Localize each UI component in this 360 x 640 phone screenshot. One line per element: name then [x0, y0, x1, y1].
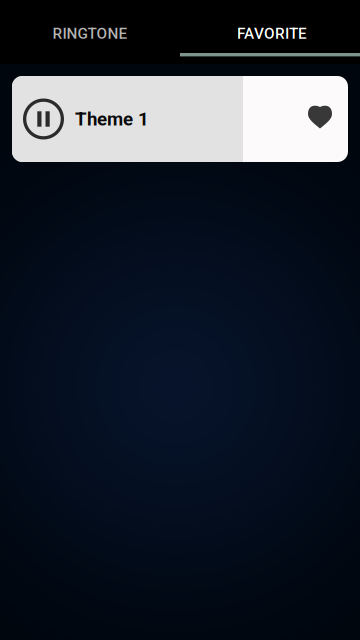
staticText: Theme 1: [75, 108, 149, 130]
button[interactable]: FAVORITE: [180, 0, 360, 64]
staticText: FAVORITE: [237, 24, 307, 42]
staticText: RINGTONE: [52, 24, 127, 42]
button[interactable]: Pause: [12, 76, 75, 162]
button[interactable]: Favorite: [292, 76, 348, 162]
button[interactable]: RINGTONE: [0, 0, 180, 64]
